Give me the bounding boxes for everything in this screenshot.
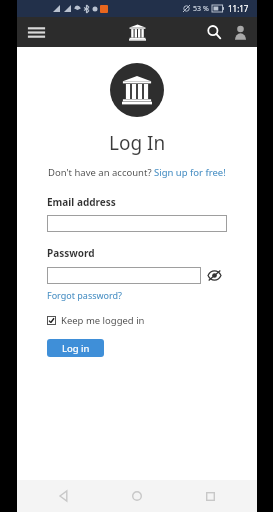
button[interactable]: Search [201, 19, 227, 45]
button[interactable] [47, 215, 227, 232]
button[interactable]: Log in [47, 339, 104, 357]
staticText: % [203, 4, 209, 14]
button[interactable]: Home [124, 19, 150, 45]
button[interactable]: Account [227, 19, 253, 45]
staticText: 53 [193, 4, 202, 14]
button[interactable]: Recent apps [197, 483, 223, 509]
button[interactable]: Sign up for free! [154, 166, 226, 179]
button[interactable]: Show password [201, 266, 227, 284]
staticText: Email address [47, 195, 116, 209]
button[interactable]: Home [124, 483, 150, 509]
button[interactable]: Open navigation menu [23, 19, 49, 45]
staticText: Don't have an account? [48, 166, 154, 179]
staticText: Password [47, 246, 95, 260]
staticText: Keep me logged in [61, 314, 145, 327]
staticText: Sign up for free! [154, 166, 226, 179]
staticText: Log In [109, 130, 166, 156]
staticText: 11:17 [228, 3, 249, 14]
staticText: Forgot password? [47, 289, 123, 301]
button[interactable] [47, 267, 201, 284]
staticText: Log in [62, 342, 90, 355]
button[interactable]: Keep me logged in [47, 314, 145, 327]
button[interactable]: Back [51, 483, 77, 509]
button[interactable]: Forgot password? [47, 289, 123, 301]
